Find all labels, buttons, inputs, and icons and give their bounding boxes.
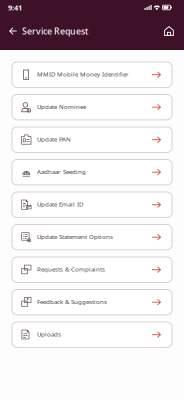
button[interactable]: Feedback & Suggestions (12, 289, 172, 315)
button[interactable]: Aadhaar Seeding (12, 159, 172, 185)
staticText: Aadhaar Seeding (37, 167, 86, 176)
staticText: MMID Mobile Money Identifier (37, 70, 129, 78)
staticText: Update Statement Options (37, 232, 113, 241)
staticText: Uploads (37, 330, 61, 338)
button[interactable]: Update Nominee (12, 94, 172, 120)
staticText: Service Request (22, 25, 88, 37)
button[interactable]: Update PAN (12, 127, 172, 152)
button[interactable]: Update Statement Options (12, 224, 172, 250)
button[interactable]: Uploads (12, 322, 172, 347)
button[interactable]: Home (154, 16, 184, 46)
staticText: Update Email ID (37, 200, 83, 208)
button[interactable]: MMID Mobile Money Identifier (12, 62, 172, 87)
button[interactable]: Requests & Complaints (12, 257, 172, 282)
staticText: Feedback & Suggestions (37, 297, 107, 306)
staticText: Update PAN (37, 135, 71, 143)
button[interactable]: Back to Service Request (0, 16, 96, 46)
button[interactable]: Update Email ID (12, 192, 172, 217)
staticText: 9:41 (8, 2, 22, 13)
staticText: Update Nominee (37, 102, 86, 111)
staticText: Requests & Complaints (37, 265, 105, 273)
